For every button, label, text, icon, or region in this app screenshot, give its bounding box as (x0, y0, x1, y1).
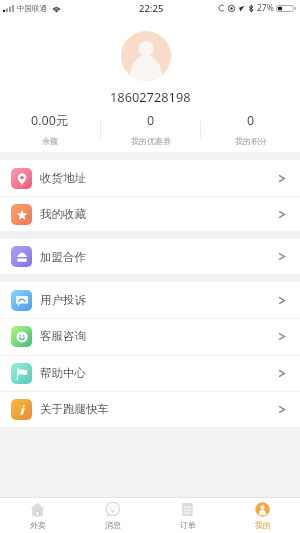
button[interactable]: 我的收藏 (0, 196, 300, 232)
staticText: 余额 (42, 136, 58, 146)
staticText: 0.00元 (31, 112, 69, 129)
button[interactable]: 0 (101, 109, 200, 149)
staticText: 中国联通 (17, 4, 47, 13)
staticText: 用户投诉 (40, 293, 86, 307)
button[interactable]: 0 (201, 109, 300, 149)
staticText: 0 (247, 112, 255, 129)
button[interactable]: 订单 (150, 498, 225, 533)
staticText: 27% (257, 2, 274, 14)
staticText: 关于跑腿快车 (40, 402, 109, 416)
button[interactable]: 外卖 (0, 498, 75, 533)
button[interactable]: 加盟合作 (0, 239, 300, 274)
staticText: 帮助中心 (40, 366, 86, 380)
staticText: 订单 (180, 520, 196, 530)
button[interactable]: 我的 (225, 498, 300, 533)
staticText: 我的积分 (235, 136, 267, 146)
staticText: 18602728198 (110, 88, 191, 105)
staticText: 0 (147, 112, 155, 129)
staticText: 加盟合作 (40, 250, 86, 264)
button[interactable]: 客服咨询 (0, 318, 300, 354)
staticText: 我的优惠券 (131, 136, 171, 146)
staticText: 消息 (105, 520, 121, 530)
staticText: 客服咨询 (40, 329, 86, 343)
button[interactable]: 0.00元 (0, 109, 100, 149)
button[interactable]: 收货地址 (0, 160, 300, 196)
button[interactable]: 用户投诉 (0, 282, 300, 318)
staticText: 我的 (255, 520, 271, 530)
staticText: 22:25 (139, 2, 164, 15)
button[interactable]: 消息 (75, 498, 150, 533)
button[interactable]: 帮助中心 (0, 355, 300, 391)
button[interactable]: User avatar (121, 31, 171, 81)
staticText: 收货地址 (40, 171, 86, 185)
staticText: 我的收藏 (40, 207, 86, 221)
staticText: 外卖 (30, 520, 46, 530)
button[interactable]: 关于跑腿快车 (0, 391, 300, 427)
